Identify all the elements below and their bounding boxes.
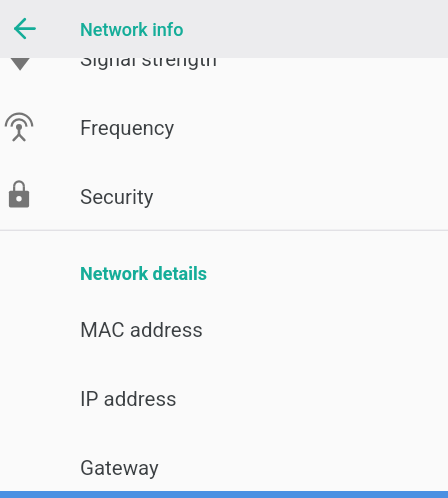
button[interactable]: Signal strength bbox=[0, 23, 448, 92]
staticText: MAC address bbox=[80, 318, 203, 342]
button[interactable]: Frequency bbox=[0, 92, 448, 161]
staticText: Network details bbox=[80, 263, 207, 284]
button[interactable]: IP address bbox=[0, 363, 448, 432]
button[interactable]: MAC address bbox=[0, 294, 448, 363]
staticText: Gateway bbox=[80, 456, 159, 480]
button[interactable]: Gateway bbox=[0, 432, 448, 498]
staticText: Frequency bbox=[80, 116, 175, 140]
staticText: Security bbox=[80, 185, 154, 209]
staticText: Network info bbox=[80, 19, 184, 40]
staticText: IP address bbox=[80, 387, 177, 411]
button[interactable]: Security bbox=[0, 161, 448, 230]
button[interactable]: Back bbox=[1, 5, 49, 53]
staticText: Signal strength bbox=[80, 47, 217, 71]
